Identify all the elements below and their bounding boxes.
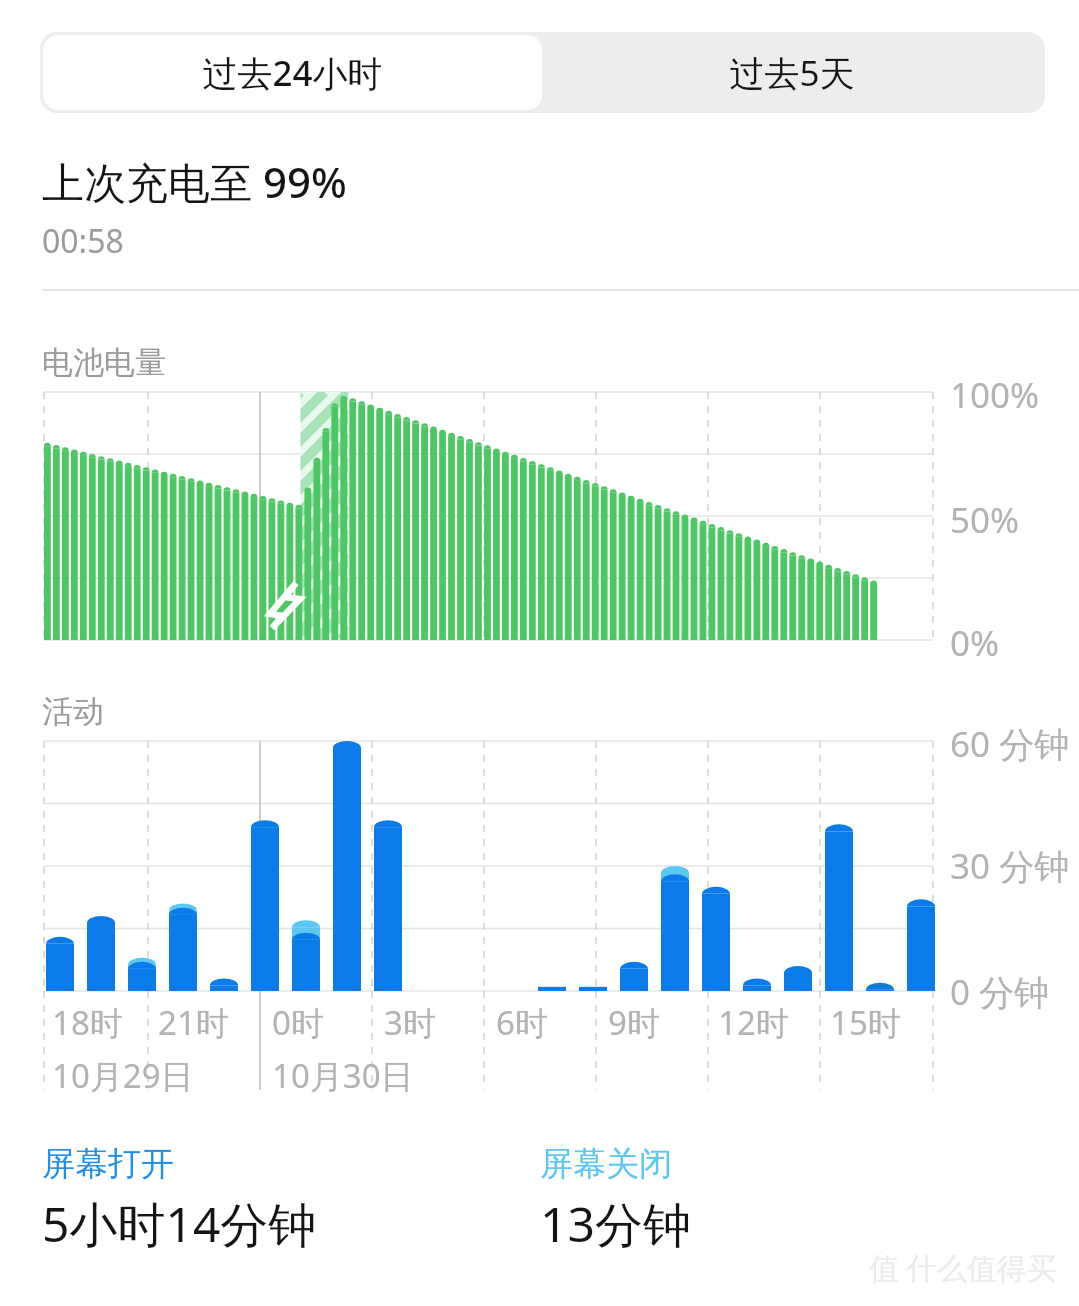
staticText: 18时 xyxy=(52,1000,123,1045)
staticText: 过去24小时 xyxy=(202,49,383,97)
staticText: 屏幕关闭 xyxy=(540,1143,672,1185)
staticText: 30 分钟 xyxy=(950,842,1070,890)
staticText: 00:58 xyxy=(42,219,124,263)
staticText: 50% xyxy=(950,496,1020,544)
staticText: 6时 xyxy=(496,1000,548,1045)
button[interactable]: 过去5天 xyxy=(542,35,1042,110)
staticText: 活动 xyxy=(42,692,104,731)
staticText: 屏幕打开 xyxy=(42,1143,174,1185)
staticText: 21时 xyxy=(158,1000,229,1045)
staticText: 10月30日 xyxy=(272,1053,414,1098)
staticText: 0 分钟 xyxy=(950,968,1050,1016)
staticText: 13分钟 xyxy=(540,1191,691,1257)
staticText: 9时 xyxy=(608,1000,660,1045)
staticText: 15时 xyxy=(830,1000,901,1045)
button[interactable]: 屏幕打开 xyxy=(42,1143,317,1257)
staticText: 5小时14分钟 xyxy=(42,1191,317,1257)
staticText: 值 什么值得买 xyxy=(869,1247,1057,1288)
staticText: 60 分钟 xyxy=(950,720,1070,768)
staticText: 上次充电至 99% xyxy=(42,153,347,210)
staticText: 过去5天 xyxy=(729,49,855,97)
staticText: 电池电量 xyxy=(42,343,166,382)
staticText: 3时 xyxy=(384,1000,436,1045)
staticText: 10月29日 xyxy=(52,1053,194,1098)
staticText: 0% xyxy=(950,619,1000,667)
staticText: 0时 xyxy=(272,1000,324,1045)
staticText: 12时 xyxy=(718,1000,789,1045)
button[interactable]: 屏幕关闭 xyxy=(540,1143,691,1257)
staticText: 100% xyxy=(950,371,1040,419)
button[interactable]: 过去24小时 xyxy=(43,35,542,110)
